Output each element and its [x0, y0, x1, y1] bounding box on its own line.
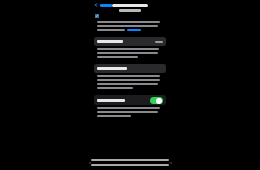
button[interactable]: [94, 3, 114, 7]
button[interactable]: [94, 37, 166, 46]
button[interactable]: Toggle on: [150, 97, 163, 104]
other: Battery icon: [95, 14, 99, 18]
button[interactable]: [94, 64, 166, 73]
button[interactable]: Toggle on: [94, 95, 166, 105]
button[interactable]: [127, 29, 141, 31]
